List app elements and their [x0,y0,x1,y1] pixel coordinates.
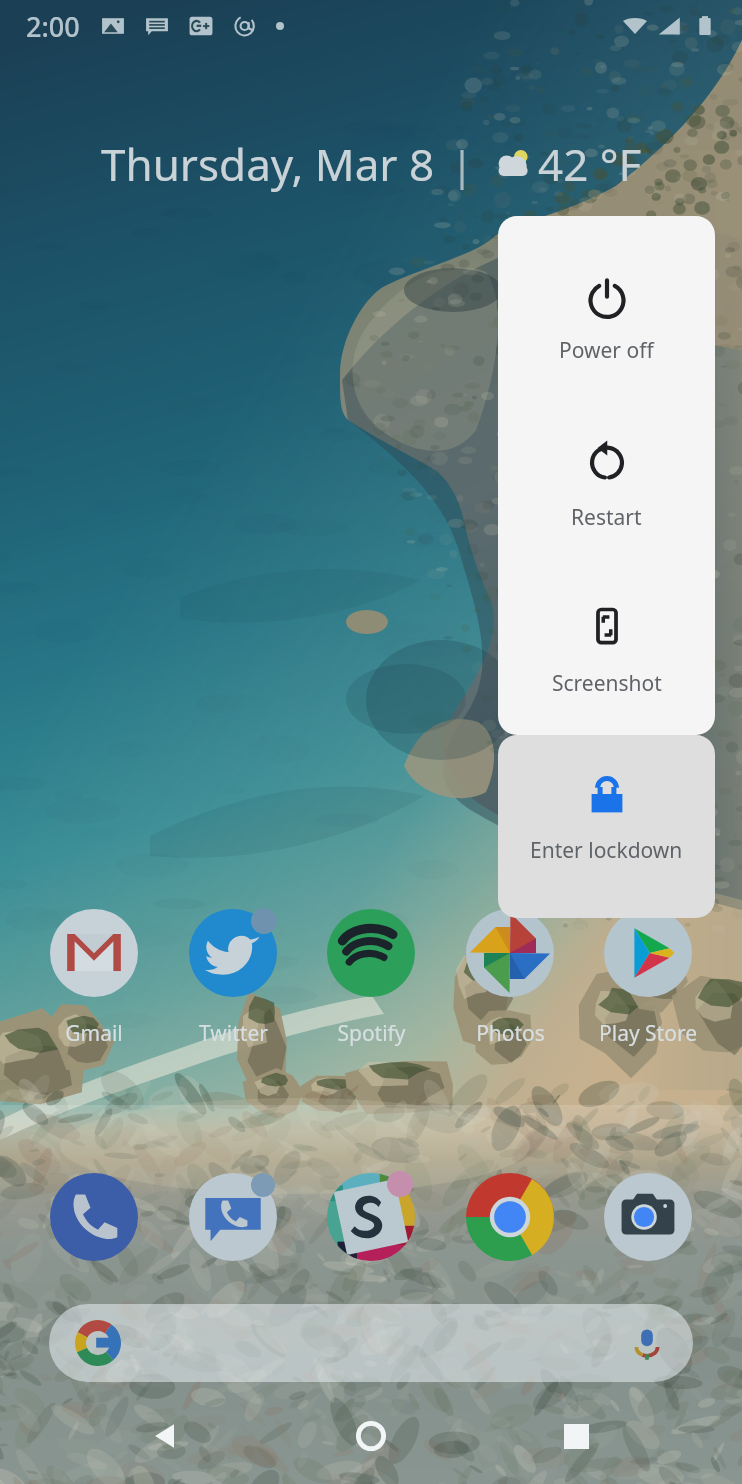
button[interactable]: Photos [440,909,580,1048]
button[interactable]: Spotify [301,909,441,1048]
button[interactable]: Messages [189,1173,277,1261]
staticText: 42 °F [538,134,642,194]
staticText: Screenshot [552,669,662,698]
button[interactable]: Chrome [466,1173,554,1261]
staticText: Enter lockdown [530,836,683,865]
staticText: Spotify [337,1019,406,1048]
staticText: Power off [559,336,654,365]
button[interactable]: Enter lockdown [498,735,715,918]
button[interactable]: Screenshot [498,596,715,735]
button[interactable]: Restart [498,430,715,580]
staticText: Play Store [599,1019,697,1048]
staticText: Restart [571,503,642,532]
staticText: Thursday, Mar 8 [101,134,435,194]
button[interactable]: Slack [327,1173,415,1261]
staticText: Gmail [65,1019,123,1048]
button[interactable]: Camera [604,1173,692,1261]
staticText: | [451,137,474,191]
button[interactable]: Recent apps [528,1388,624,1484]
button[interactable]: Phone [50,1173,138,1261]
button[interactable]: Home [323,1388,419,1484]
staticText: 2:00 [26,8,80,45]
button[interactable]: Power off [498,268,715,418]
button[interactable]: Back [117,1388,213,1484]
button[interactable]: Twitter [163,909,303,1048]
staticText: Twitter [199,1019,268,1048]
staticText: Photos [476,1019,545,1048]
button[interactable] [49,1304,693,1382]
button[interactable]: Gmail [24,909,164,1048]
button[interactable]: Play Store [578,909,718,1048]
